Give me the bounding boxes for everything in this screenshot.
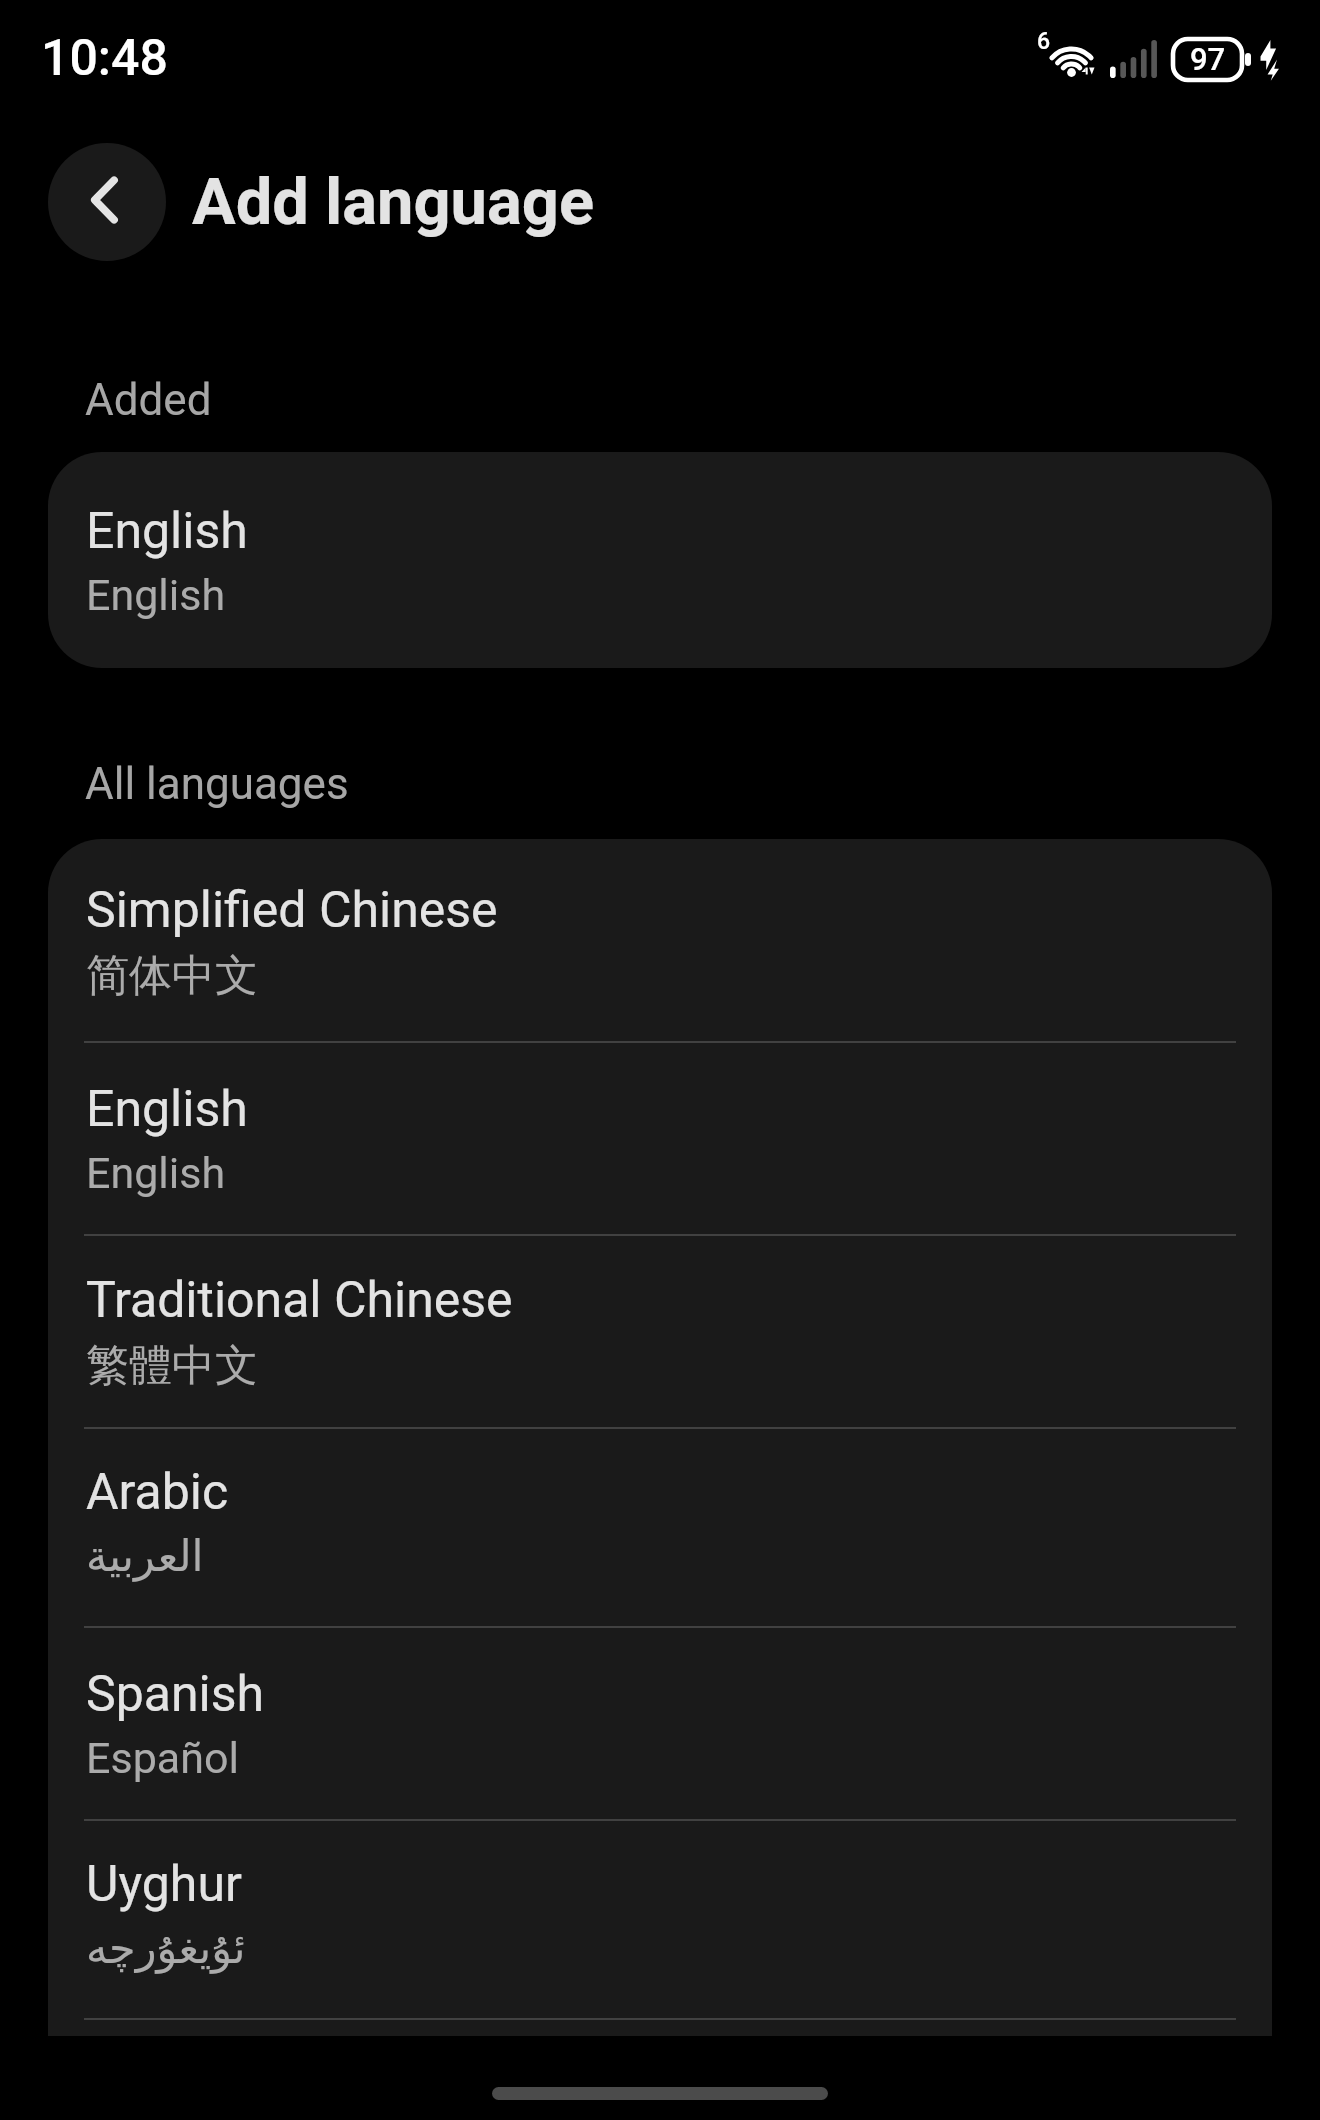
button[interactable]: English bbox=[48, 1043, 1272, 1236]
button[interactable]: Uyghur bbox=[48, 1821, 1272, 2020]
staticText: 6 bbox=[1037, 28, 1051, 55]
staticText: 10:48 bbox=[41, 29, 168, 88]
staticText: English bbox=[86, 502, 248, 561]
staticText: Add language bbox=[192, 164, 594, 240]
staticText: Simplified Chinese bbox=[86, 881, 498, 940]
button[interactable]: Spanish bbox=[48, 1628, 1272, 1821]
staticText: English bbox=[86, 570, 226, 620]
staticText: 简体中文 bbox=[86, 949, 258, 1003]
staticText: العربية bbox=[86, 1531, 204, 1581]
staticText: Uyghur bbox=[86, 1855, 242, 1914]
staticText: Arabic bbox=[86, 1463, 229, 1522]
staticText: Traditional Chinese bbox=[86, 1271, 513, 1330]
staticText: ئۇيغۇرچە bbox=[86, 1923, 246, 1973]
staticText: Spanish bbox=[86, 1665, 265, 1724]
staticText: 97 bbox=[1190, 41, 1226, 77]
button[interactable]: Simplified Chinese bbox=[48, 839, 1272, 1043]
staticText: English bbox=[86, 1148, 226, 1198]
button[interactable]: Back bbox=[48, 143, 166, 261]
staticText: Español bbox=[86, 1733, 239, 1783]
staticText: 繁體中文 bbox=[86, 1339, 258, 1393]
button[interactable]: Traditional Chinese bbox=[48, 1236, 1272, 1429]
button[interactable]: English bbox=[48, 452, 1272, 668]
button[interactable]: Arabic bbox=[48, 1429, 1272, 1628]
staticText: Added bbox=[85, 374, 212, 426]
staticText: English bbox=[86, 1080, 248, 1139]
staticText: All languages bbox=[85, 758, 349, 810]
